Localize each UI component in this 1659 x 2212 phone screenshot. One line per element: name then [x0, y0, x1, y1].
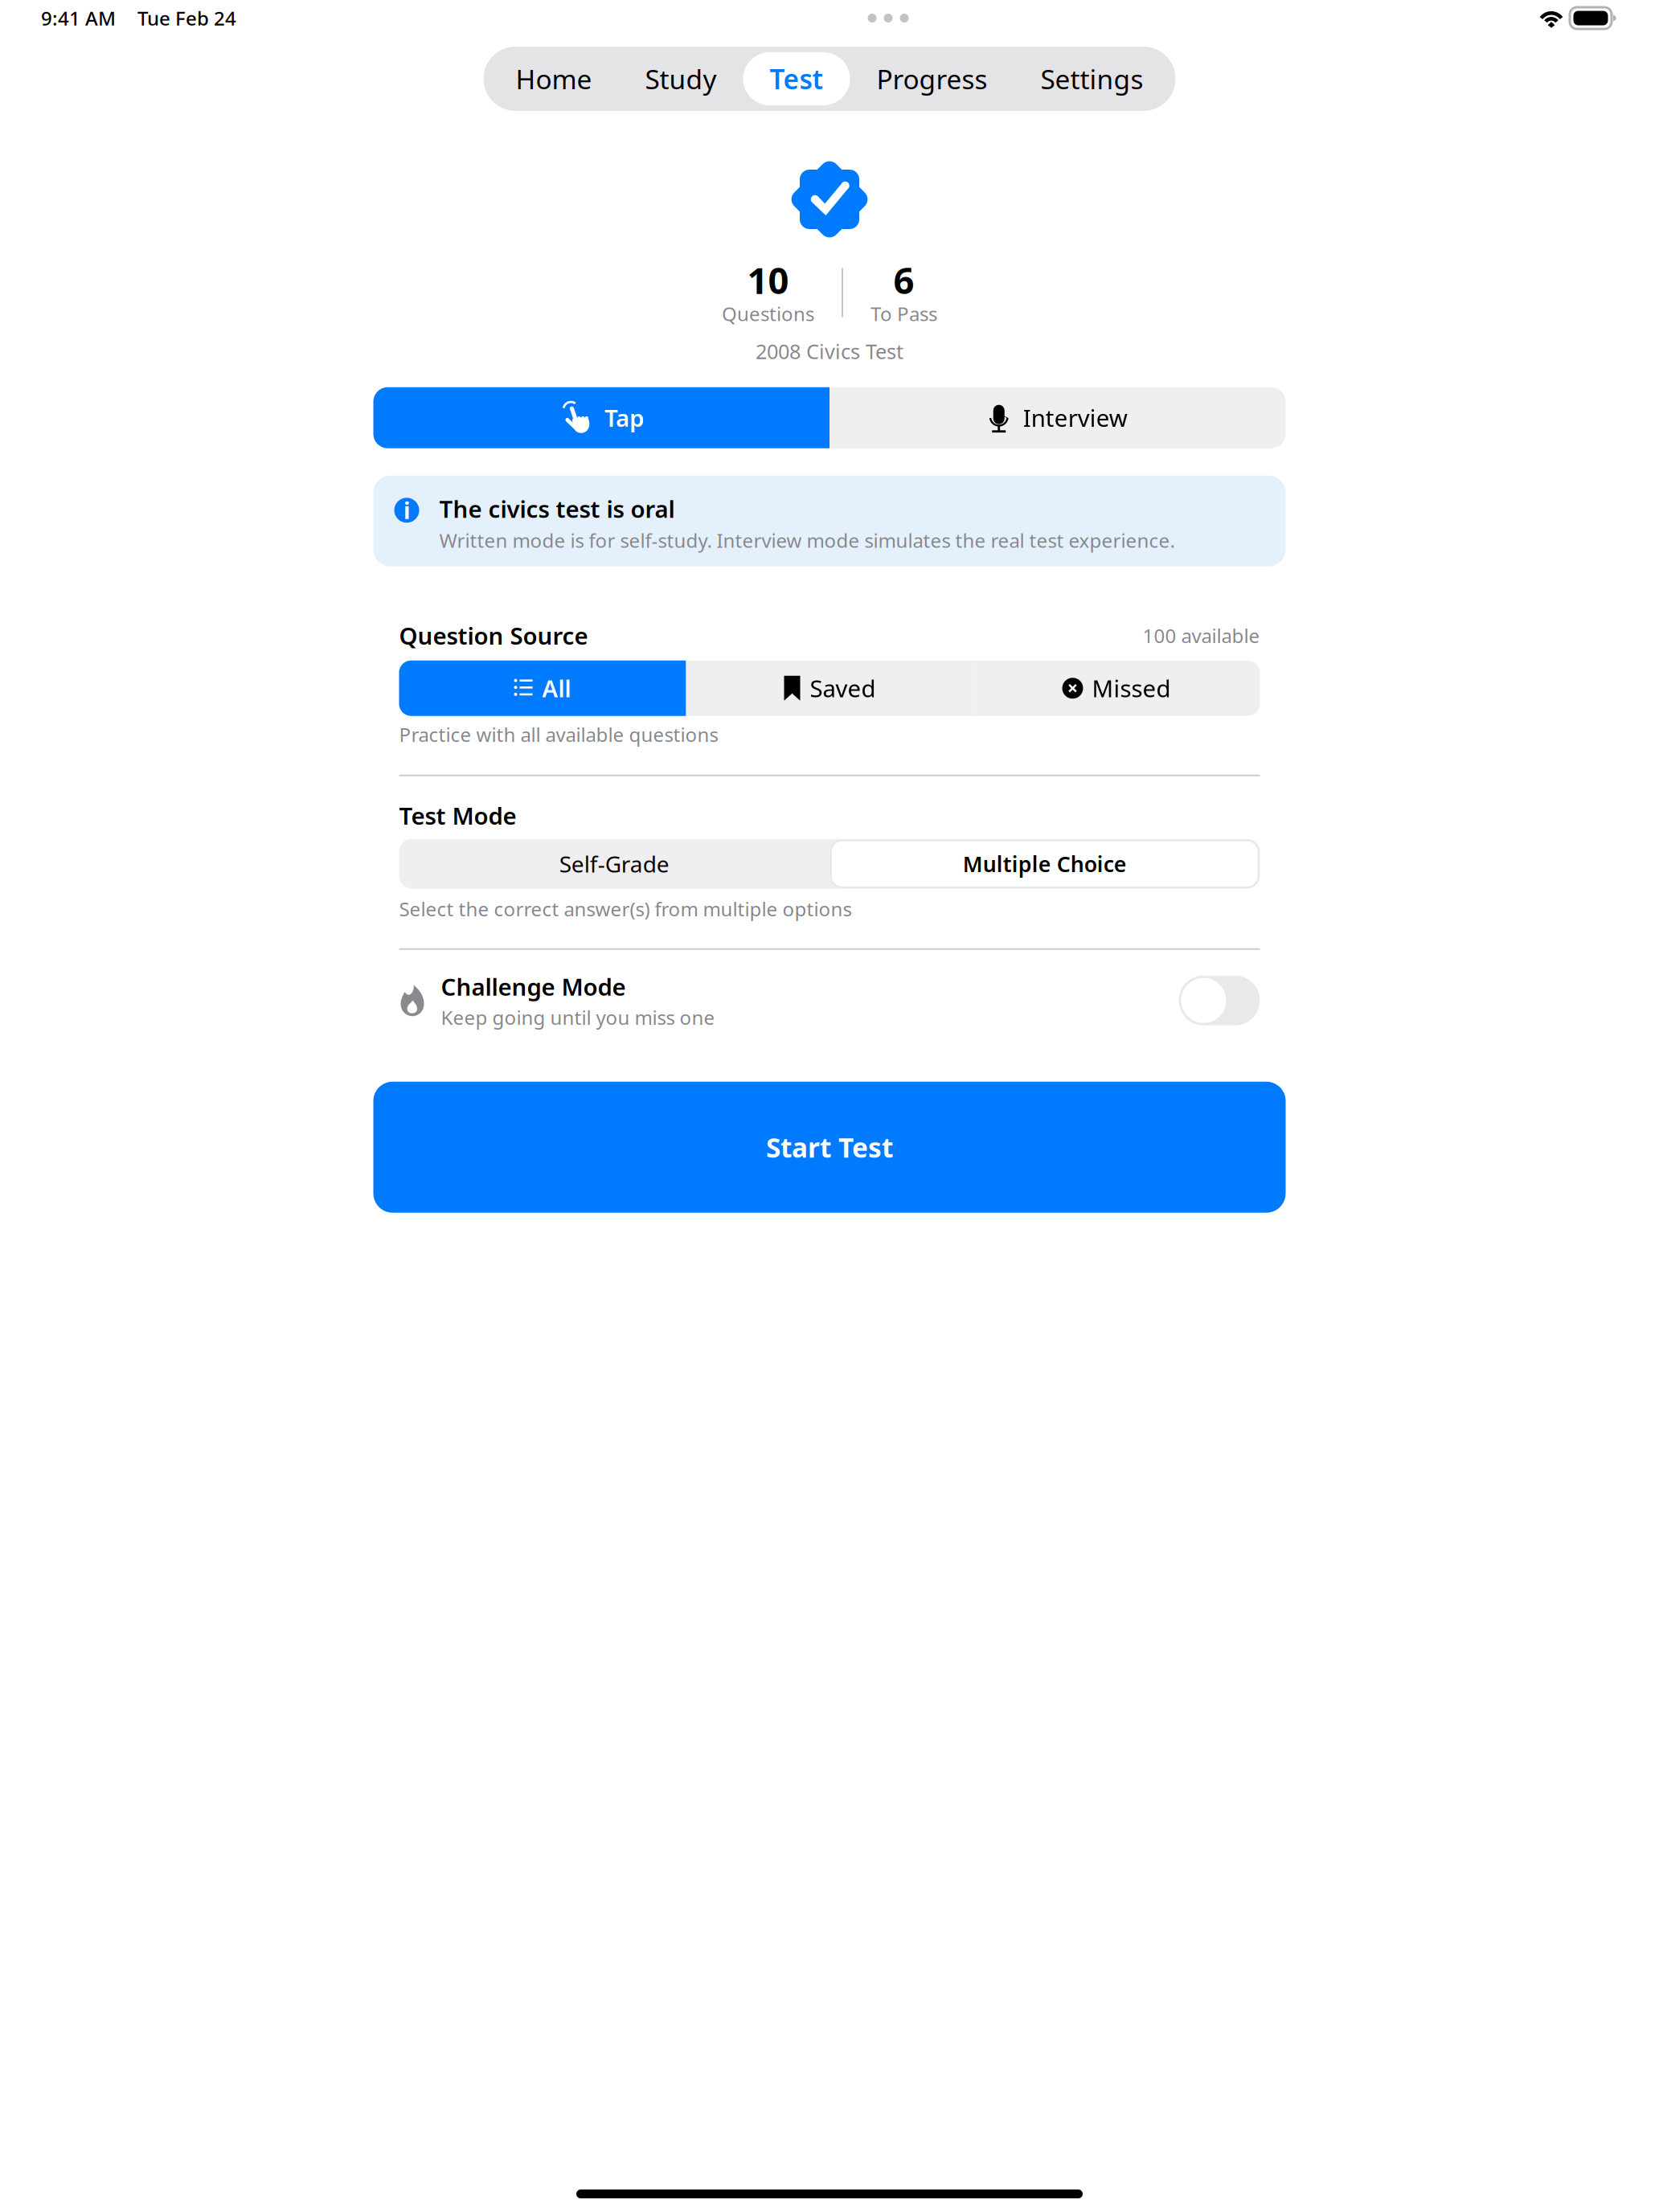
button[interactable]: Tap: [373, 387, 829, 448]
staticText: Keep going until you miss one: [441, 1005, 715, 1030]
staticText: 9:41 AM: [41, 5, 116, 31]
staticText: Saved: [810, 673, 876, 704]
staticText: Home: [516, 61, 592, 97]
button[interactable]: Multiple Choice: [829, 839, 1260, 889]
staticText: Select the correct answer(s) from multip…: [399, 896, 852, 922]
button[interactable]: Home: [489, 52, 619, 105]
staticText: i: [403, 495, 410, 525]
staticText: 2008 Civics Test: [756, 338, 903, 365]
button[interactable]: Saved: [686, 660, 973, 716]
staticText: The civics test is oral: [439, 493, 675, 524]
button[interactable]: Progress: [850, 52, 1014, 105]
button[interactable]: Interview: [829, 387, 1286, 448]
staticText: 10: [747, 256, 789, 304]
staticText: 100 available: [1143, 623, 1260, 648]
button[interactable]: Test: [743, 52, 850, 105]
staticText: Settings: [1040, 61, 1143, 97]
staticText: All: [542, 673, 571, 704]
staticText: To Pass: [870, 301, 937, 326]
staticText: Questions: [722, 301, 814, 326]
button[interactable]: Start Test: [373, 1082, 1286, 1213]
staticText: Self-Grade: [559, 849, 669, 879]
staticText: Missed: [1092, 673, 1171, 704]
staticText: 6: [893, 256, 914, 304]
staticText: Question Source: [399, 620, 588, 651]
staticText: Tue Feb 24: [137, 5, 236, 31]
button[interactable]: Challenge Mode: [1179, 976, 1260, 1025]
staticText: Test Mode: [399, 800, 516, 831]
staticText: Test: [770, 61, 823, 97]
button[interactable]: Missed: [973, 660, 1260, 716]
staticText: Multiple Choice: [963, 850, 1127, 878]
button[interactable]: Study: [619, 52, 743, 105]
staticText: Study: [645, 61, 717, 97]
button[interactable]: All: [399, 660, 686, 716]
staticText: Tap: [605, 402, 644, 433]
staticText: Practice with all available questions: [399, 722, 718, 747]
staticText: Written mode is for self-study. Intervie…: [439, 528, 1175, 553]
button[interactable]: Self-Grade: [399, 839, 829, 889]
staticText: Start Test: [766, 1129, 893, 1165]
staticText: Progress: [877, 61, 987, 97]
staticText: Challenge Mode: [441, 971, 626, 1002]
button[interactable]: Settings: [1014, 52, 1170, 105]
staticText: Interview: [1023, 402, 1128, 433]
